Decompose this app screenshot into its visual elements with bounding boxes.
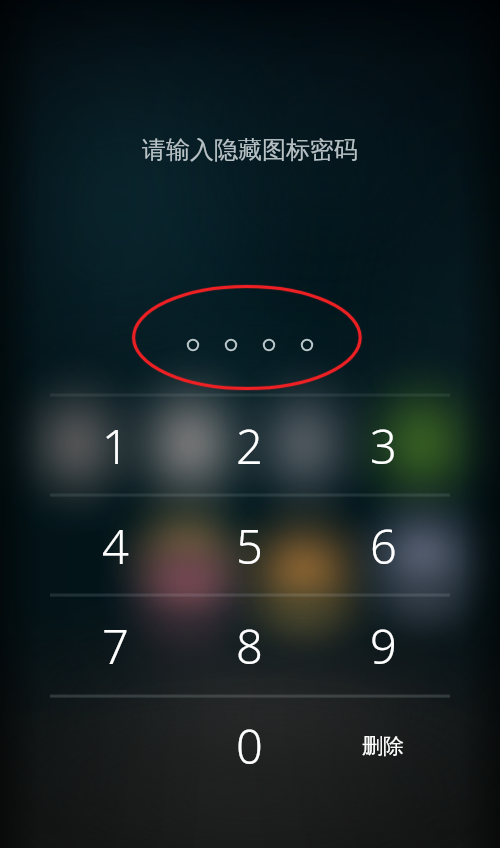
button[interactable]: 删除 xyxy=(316,696,450,796)
staticText: 2 xyxy=(236,414,263,478)
staticText: 7 xyxy=(102,614,129,678)
button[interactable]: 2 xyxy=(182,396,316,496)
button[interactable]: 5 xyxy=(182,496,316,596)
staticText: 8 xyxy=(236,614,263,678)
staticText: 5 xyxy=(236,514,263,578)
staticText: 3 xyxy=(370,414,397,478)
button[interactable]: 8 xyxy=(182,596,316,696)
button[interactable]: 4 xyxy=(48,496,182,596)
button[interactable]: 6 xyxy=(316,496,450,596)
staticText: 删除 xyxy=(362,733,404,759)
button[interactable] xyxy=(48,696,182,796)
button[interactable]: 3 xyxy=(316,396,450,496)
button[interactable]: 0 xyxy=(182,696,316,796)
staticText: 9 xyxy=(370,614,397,678)
staticText: 0 xyxy=(236,714,263,778)
staticText: 请输入隐藏图标密码 xyxy=(0,135,500,165)
button[interactable]: 9 xyxy=(316,596,450,696)
button[interactable]: 1 xyxy=(48,396,182,496)
staticText: 4 xyxy=(102,514,129,578)
staticText: 1 xyxy=(102,414,129,478)
button[interactable]: 7 xyxy=(48,596,182,696)
staticText: 6 xyxy=(370,514,397,578)
